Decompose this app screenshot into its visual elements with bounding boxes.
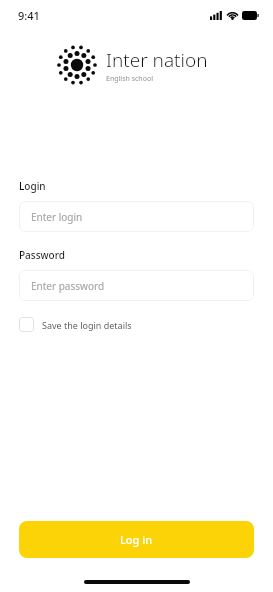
button[interactable]: Enter login bbox=[19, 201, 254, 232]
button[interactable]: Save the login details bbox=[19, 315, 132, 334]
staticText: English school bbox=[106, 74, 153, 84]
staticText: Enter login bbox=[31, 210, 83, 224]
button[interactable]: Log in bbox=[19, 521, 254, 558]
button[interactable]: Enter password bbox=[19, 270, 254, 301]
staticText: Save the login details bbox=[42, 319, 132, 331]
staticText: Log in bbox=[120, 532, 153, 547]
staticText: Login bbox=[19, 179, 46, 193]
staticText: Enter password bbox=[31, 279, 105, 293]
staticText: Inter nation bbox=[106, 47, 208, 73]
staticText: Password bbox=[19, 248, 65, 262]
staticText: 9:41 bbox=[18, 8, 40, 23]
